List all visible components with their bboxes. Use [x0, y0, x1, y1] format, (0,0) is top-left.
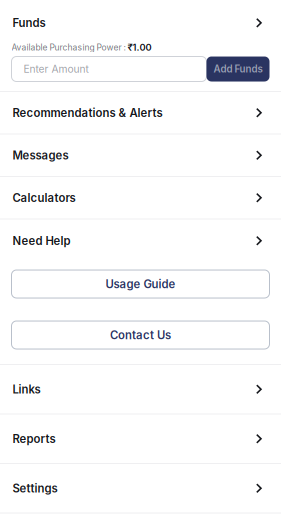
- staticText: Available Purchasing Power :: [11, 42, 127, 52]
- staticText: Contact Us: [110, 328, 171, 342]
- button[interactable]: Reports: [0, 414, 281, 464]
- button[interactable]: Settings: [0, 464, 281, 513]
- button[interactable]: Add Funds: [206, 56, 269, 81]
- staticText: Calculators: [12, 191, 75, 205]
- staticText: ₹1.00: [127, 42, 151, 53]
- staticText: Add Funds: [213, 63, 262, 75]
- staticText: Reports: [12, 432, 55, 446]
- button[interactable]: Usage Guide: [11, 270, 269, 298]
- button[interactable]: Calculators: [0, 177, 281, 219]
- button[interactable]: Messages: [0, 134, 281, 177]
- staticText: Funds: [12, 16, 45, 30]
- staticText: Recommendations & Alerts: [12, 106, 162, 120]
- button[interactable]: Recommendations & Alerts: [0, 92, 281, 134]
- button[interactable]: Contact Us: [11, 321, 269, 349]
- staticText: Enter Amount: [23, 63, 88, 75]
- button[interactable]: Links: [0, 365, 281, 414]
- staticText: Messages: [12, 148, 68, 162]
- staticText: Need Help: [12, 234, 70, 248]
- staticText: Links: [12, 382, 40, 396]
- staticText: Settings: [12, 481, 57, 495]
- button[interactable]: Need Help: [0, 219, 281, 262]
- button[interactable]: Funds: [0, 0, 281, 30]
- staticText: Usage Guide: [105, 277, 175, 291]
